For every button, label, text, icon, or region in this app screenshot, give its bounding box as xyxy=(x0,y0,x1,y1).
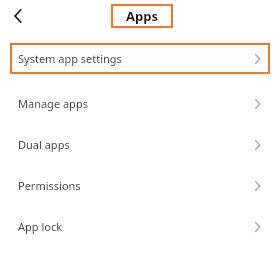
button[interactable]: App lock xyxy=(0,206,280,247)
staticText: Dual apps xyxy=(18,137,70,152)
staticText: Permissions xyxy=(18,178,81,193)
staticText: App lock xyxy=(18,219,63,234)
button[interactable]: Back xyxy=(6,3,32,29)
staticText: Apps xyxy=(126,7,158,25)
button[interactable]: Permissions xyxy=(0,165,280,206)
staticText: Manage apps xyxy=(18,96,88,111)
button[interactable]: Dual apps xyxy=(0,124,280,165)
button[interactable]: Manage apps xyxy=(0,83,280,124)
button[interactable]: System app settings xyxy=(10,43,270,74)
staticText: System app settings xyxy=(18,51,122,66)
